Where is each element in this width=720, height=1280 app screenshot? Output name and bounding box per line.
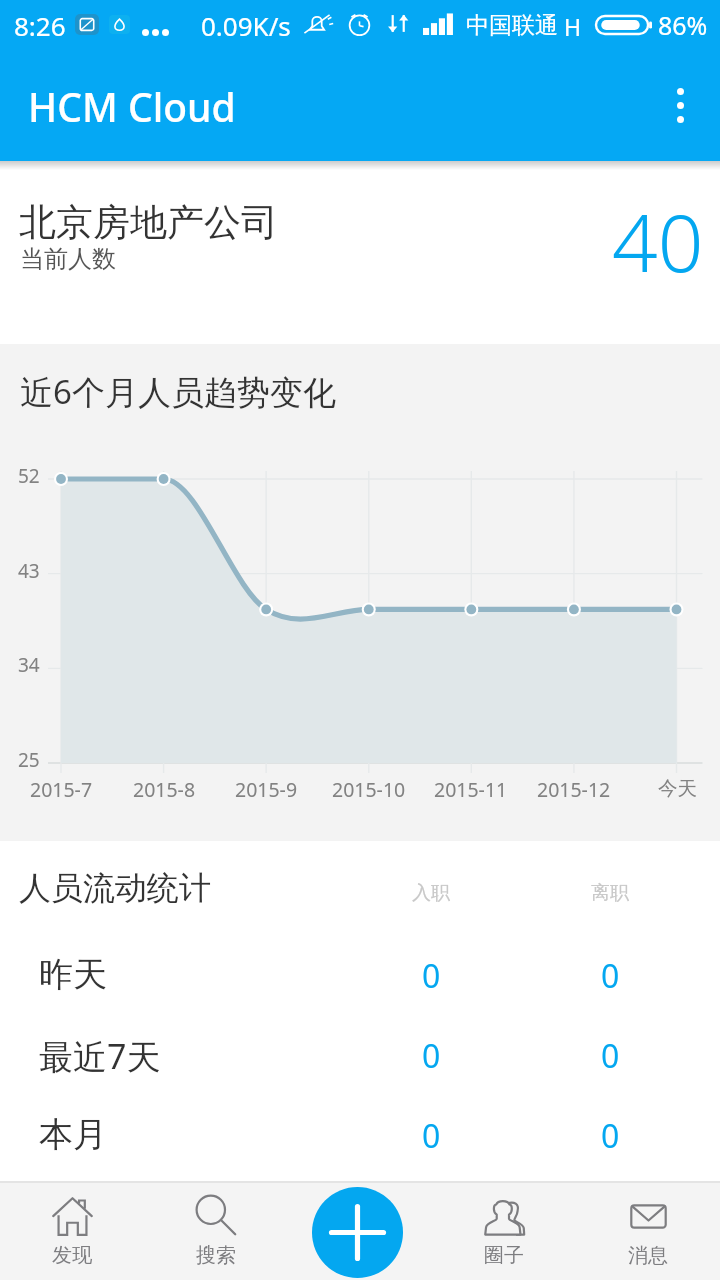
staticText: 今天 <box>658 776 697 801</box>
staticText: 34 <box>18 652 40 678</box>
staticText: 0 <box>422 1114 441 1158</box>
staticText: 0 <box>422 1034 441 1078</box>
staticText: 人员流动统计 <box>19 868 211 908</box>
button[interactable]: 搜索 <box>144 1181 288 1280</box>
staticText: 本月 <box>39 1113 107 1156</box>
staticText: 中国联通 <box>466 11 558 40</box>
staticText: 北京房地产公司 <box>19 199 278 246</box>
staticText: 2015-12 <box>537 776 611 803</box>
staticText: 0 <box>422 954 441 998</box>
staticText: 86% <box>658 8 708 42</box>
staticText: 40 <box>612 186 704 295</box>
staticText: 近6个月人员趋势变化 <box>20 369 336 414</box>
staticText: 最近7天 <box>39 1033 161 1079</box>
button[interactable]: 消息 <box>576 1181 720 1280</box>
button[interactable]: 圈子 <box>432 1181 576 1280</box>
staticText: 0 <box>601 1034 620 1078</box>
staticText: 52 <box>18 463 40 489</box>
staticText: 离职 <box>591 881 629 905</box>
staticText: 2015-10 <box>332 776 406 803</box>
staticText: 8:26 <box>14 8 66 43</box>
staticText: 0 <box>601 954 620 998</box>
staticText: 消息 <box>628 1243 668 1268</box>
staticText: 入职 <box>412 881 450 905</box>
staticText: 当前人数 <box>20 244 116 274</box>
button[interactable]: 昨天 <box>0 934 720 1014</box>
button[interactable]: More options <box>640 65 720 145</box>
staticText: HCM Cloud <box>28 80 236 133</box>
button[interactable]: 本月 <box>0 1094 720 1174</box>
staticText: 发现 <box>52 1243 92 1268</box>
staticText: 圈子 <box>484 1243 524 1268</box>
staticText: H <box>564 11 582 42</box>
staticText: 43 <box>18 558 40 584</box>
button[interactable]: Add <box>312 1187 403 1278</box>
staticText: 25 <box>18 747 40 773</box>
staticText: 2015-9 <box>235 776 298 803</box>
button[interactable]: 发现 <box>0 1181 144 1280</box>
staticText: 2015-11 <box>434 776 508 803</box>
staticText: 搜索 <box>196 1243 236 1268</box>
button[interactable]: 北京房地产公司 <box>0 161 720 344</box>
button[interactable]: 最近7天 <box>0 1014 720 1094</box>
staticText: 2015-8 <box>133 776 196 803</box>
staticText: 2015-7 <box>30 776 93 803</box>
staticText: 昨天 <box>39 953 107 996</box>
staticText: 0 <box>601 1114 620 1158</box>
staticText: 0.09K/s <box>201 8 291 43</box>
